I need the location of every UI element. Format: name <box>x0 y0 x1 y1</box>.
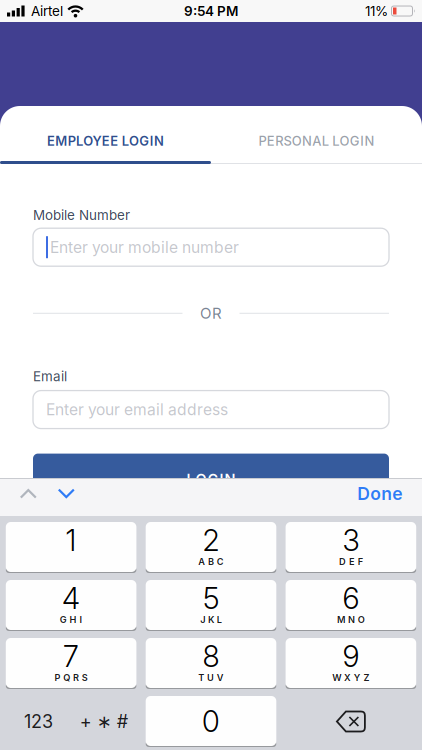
staticText: Done <box>357 483 402 504</box>
button[interactable]: Enter your email address <box>33 391 389 429</box>
button[interactable]: 0 <box>146 696 276 747</box>
staticText: A B C <box>198 556 224 567</box>
button[interactable] <box>0 489 37 499</box>
button[interactable]: 1 <box>6 522 136 573</box>
staticText: + ∗ # <box>80 711 128 732</box>
button[interactable] <box>286 696 416 747</box>
staticText: Enter your mobile number <box>50 238 239 257</box>
staticText: M N O <box>337 614 365 625</box>
staticText: Email <box>33 368 67 385</box>
staticText: 123 <box>24 711 53 732</box>
button[interactable]: 8 <box>146 638 276 689</box>
staticText: 3 <box>342 523 359 558</box>
staticText: Mobile Number <box>33 207 130 223</box>
button[interactable]: + ∗ # <box>71 696 136 747</box>
button[interactable]: 6 <box>286 580 416 631</box>
button[interactable]: 5 <box>146 580 276 631</box>
staticText: W X Y Z <box>332 672 370 683</box>
button[interactable]: 123 <box>6 696 71 747</box>
staticText: 4 <box>62 581 80 616</box>
staticText: 5 <box>203 581 219 616</box>
staticText: 6 <box>342 581 359 616</box>
staticText: 7 <box>63 639 79 674</box>
button[interactable]: 4 <box>6 580 136 631</box>
button[interactable]: Enter your mobile number <box>33 228 389 266</box>
staticText: Airtel <box>31 3 63 19</box>
button[interactable] <box>37 489 75 499</box>
button[interactable]: LOGIN <box>33 454 389 506</box>
staticText: PERSONAL LOGIN <box>259 133 374 149</box>
staticText: J K L <box>200 614 222 625</box>
staticText: OR <box>200 304 222 322</box>
staticText: D E F <box>339 556 363 567</box>
button[interactable]: 7 <box>6 638 136 689</box>
staticText: 2 <box>202 523 219 558</box>
staticText: G H I <box>60 614 82 625</box>
staticText: 8 <box>202 639 219 674</box>
staticText: P Q R S <box>54 672 88 683</box>
staticText: 9:54 PM <box>184 3 238 19</box>
staticText: Enter your email address <box>46 400 228 419</box>
button[interactable]: 2 <box>146 522 276 573</box>
button[interactable]: 9 <box>286 638 416 689</box>
button[interactable]: 3 <box>286 522 416 573</box>
staticText: 11% <box>365 3 388 19</box>
staticText: LOGIN <box>186 471 235 488</box>
button[interactable]: Done <box>357 483 422 504</box>
staticText: 0 <box>202 704 220 739</box>
button[interactable]: EMPLOYEE LOGIN <box>0 124 211 158</box>
staticText: EMPLOYEE LOGIN <box>47 133 164 149</box>
staticText: T U V <box>198 672 224 683</box>
staticText: 9 <box>342 639 359 674</box>
button[interactable]: PERSONAL LOGIN <box>211 124 422 158</box>
staticText: 1 <box>66 523 77 558</box>
